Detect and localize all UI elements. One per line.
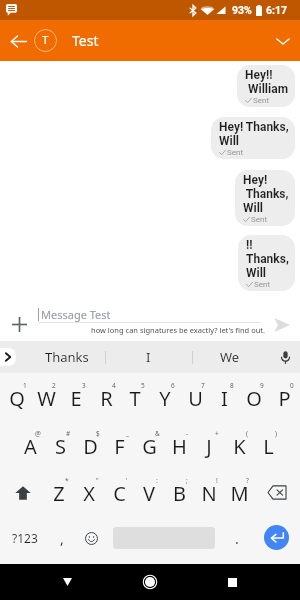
staticText: - — [186, 429, 189, 438]
button[interactable]: V — [135, 478, 163, 506]
button[interactable]: Q — [3, 383, 31, 411]
button[interactable]: U — [181, 383, 209, 411]
staticText: Message Test — [41, 307, 111, 322]
button[interactable]: Thanks — [40, 341, 94, 373]
staticText: , — [60, 529, 64, 548]
staticText: L — [263, 433, 274, 460]
staticText: 6:17 — [266, 4, 288, 16]
button[interactable]: W — [32, 383, 60, 411]
staticText: Thanks — [45, 348, 89, 366]
staticText: Hey! Thanks, Will — [243, 173, 289, 215]
button[interactable]: Enter — [264, 525, 289, 550]
staticText: I — [146, 348, 151, 366]
button[interactable]: Recent apps — [217, 567, 248, 597]
button[interactable]: Emoji keyboard — [78, 524, 104, 552]
staticText: X — [83, 480, 95, 507]
staticText: V — [143, 480, 155, 507]
button[interactable]: O — [240, 383, 268, 411]
staticText: 0 — [290, 381, 294, 390]
button[interactable]: J — [195, 431, 223, 459]
button[interactable]: T — [121, 383, 149, 411]
button[interactable]: R — [92, 383, 120, 411]
staticText: ?123 — [12, 530, 38, 546]
button[interactable]: Hey! Thanks, Will — [235, 170, 295, 226]
button[interactable]: Contact avatar — [34, 29, 57, 52]
staticText: Hey! Thanks, Will — [219, 120, 289, 148]
button[interactable]: F — [105, 431, 133, 459]
staticText: @ — [35, 429, 41, 438]
button[interactable]: G — [135, 431, 163, 459]
button[interactable]: D — [76, 431, 104, 459]
staticText: M — [230, 480, 249, 507]
button[interactable]: X — [75, 478, 103, 506]
staticText: Y — [159, 385, 171, 412]
button[interactable]: Expand conversation details — [270, 28, 296, 54]
staticText: " — [96, 476, 99, 485]
button[interactable]: M — [225, 478, 253, 506]
staticText: !! Thanks, Will — [246, 238, 289, 280]
staticText: J — [206, 433, 212, 460]
staticText: R — [100, 385, 113, 412]
staticText: W — [37, 385, 56, 412]
staticText: ; — [186, 476, 188, 485]
button[interactable]: E — [62, 383, 90, 411]
button[interactable]: H — [165, 431, 193, 459]
staticText: * — [65, 476, 69, 485]
button[interactable]: C — [105, 478, 133, 506]
staticText: Sent — [254, 280, 271, 289]
button[interactable]: I — [210, 383, 238, 411]
staticText: ) — [275, 429, 277, 438]
staticText: ' — [126, 476, 128, 485]
staticText: E — [70, 385, 82, 412]
button[interactable]: K — [225, 431, 253, 459]
button[interactable]: B — [165, 478, 193, 506]
staticText: Sent — [227, 148, 244, 157]
button[interactable]: We — [210, 341, 250, 373]
staticText: ? — [246, 476, 249, 485]
staticText: C — [113, 480, 126, 507]
button[interactable]: L — [254, 431, 282, 459]
button[interactable]: Voice input — [273, 345, 297, 369]
button[interactable]: Home — [134, 567, 165, 597]
button[interactable]: Z — [45, 478, 73, 506]
button[interactable]: ?123 — [5, 524, 45, 552]
button[interactable]: P — [270, 383, 298, 411]
staticText: : — [156, 476, 158, 485]
staticText: Sent — [253, 96, 270, 105]
staticText: S — [55, 433, 66, 460]
staticText: Z — [53, 480, 65, 507]
staticText: ( — [246, 429, 248, 438]
staticText: + — [215, 429, 219, 438]
staticText: Test — [72, 31, 99, 50]
button[interactable]: Send message — [269, 312, 295, 338]
staticText: F — [114, 433, 125, 460]
button[interactable]: , — [48, 524, 76, 552]
staticText: 1 — [23, 381, 27, 390]
button[interactable]: A — [16, 431, 44, 459]
button[interactable]: Back — [5, 28, 31, 54]
staticText: T — [42, 34, 49, 47]
staticText: Hey!! William — [245, 68, 289, 96]
staticText: B — [173, 480, 186, 507]
staticText: N — [201, 480, 217, 507]
staticText: 4 — [112, 381, 116, 390]
button[interactable]: S — [46, 431, 74, 459]
button[interactable]: Hey!! William — [237, 65, 295, 107]
staticText: A — [24, 433, 37, 460]
staticText: I — [221, 385, 228, 412]
button[interactable]: More suggestions — [0, 348, 16, 366]
button[interactable]: !! Thanks, Will — [238, 235, 295, 291]
button[interactable]: N — [195, 478, 223, 506]
button[interactable]: Back — [52, 567, 83, 597]
button[interactable]: Add attachment — [6, 311, 32, 337]
button[interactable]: Shift — [8, 479, 38, 506]
button[interactable]: . — [224, 524, 250, 552]
button[interactable]: Backspace — [262, 479, 292, 506]
staticText: _ — [126, 429, 129, 438]
button[interactable]: I — [128, 341, 168, 373]
button[interactable]: Hey! Thanks, Will — [211, 117, 295, 159]
staticText: H — [172, 433, 187, 460]
button[interactable]: Y — [151, 383, 179, 411]
staticText: 3 — [82, 381, 86, 390]
